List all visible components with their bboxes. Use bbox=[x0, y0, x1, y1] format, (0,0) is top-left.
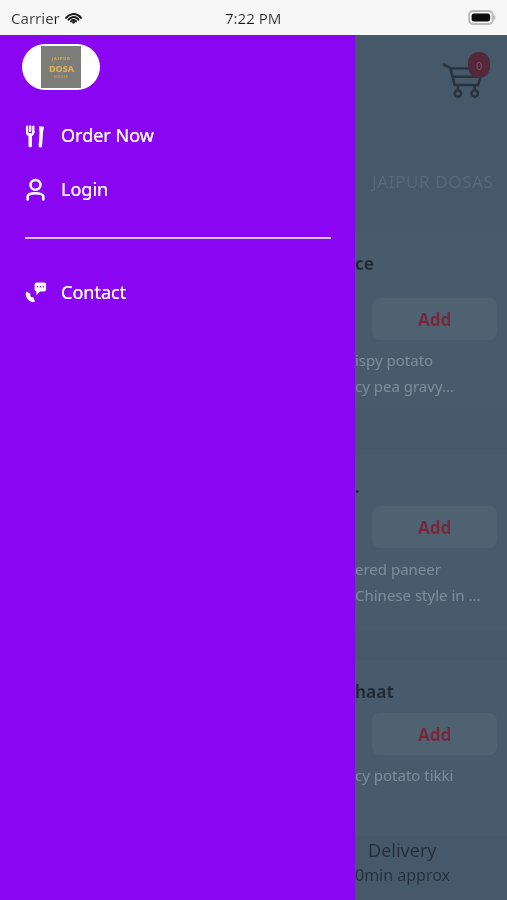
staticText: ered paneer bbox=[355, 559, 441, 579]
staticText: JAIPUR bbox=[52, 56, 71, 61]
button[interactable]: JAIPUR bbox=[22, 44, 100, 90]
staticText: Add bbox=[418, 723, 452, 746]
staticText: Carrier bbox=[11, 8, 60, 28]
staticText: Add bbox=[418, 516, 452, 539]
staticText: Contact bbox=[61, 280, 127, 305]
staticText: 0 bbox=[476, 58, 483, 73]
button[interactable]: Add bbox=[372, 506, 497, 548]
staticText: 7:22 PM bbox=[225, 8, 282, 28]
staticText: ce bbox=[355, 252, 374, 275]
staticText: cy potato tikki bbox=[355, 765, 454, 785]
staticText: Order Now bbox=[61, 123, 154, 148]
other: Contact bbox=[24, 281, 47, 304]
other: Login bbox=[24, 178, 47, 201]
button[interactable]: Contact bbox=[0, 270, 355, 314]
staticText: JAIPUR DOSAS bbox=[372, 170, 494, 193]
staticText: 0min approx bbox=[355, 864, 451, 886]
staticText: Add bbox=[418, 308, 452, 331]
staticText: Delivery bbox=[368, 838, 437, 863]
staticText: HOUSE bbox=[54, 74, 69, 79]
button[interactable]: Add bbox=[372, 713, 497, 755]
staticText: . bbox=[355, 475, 360, 498]
staticText: ispy potato bbox=[355, 350, 434, 370]
staticText: Chinese style in … bbox=[355, 585, 481, 605]
staticText: DOSA bbox=[49, 62, 74, 74]
button[interactable]: Login bbox=[0, 167, 355, 211]
button[interactable]: Order Now bbox=[0, 113, 355, 157]
button[interactable]: Add bbox=[372, 298, 497, 340]
other: Order Now bbox=[24, 124, 47, 147]
staticText: haat bbox=[355, 680, 394, 703]
staticText: Login bbox=[61, 177, 109, 202]
staticText: cy pea gravy… bbox=[355, 376, 454, 396]
button[interactable]: Cart bbox=[438, 52, 494, 104]
